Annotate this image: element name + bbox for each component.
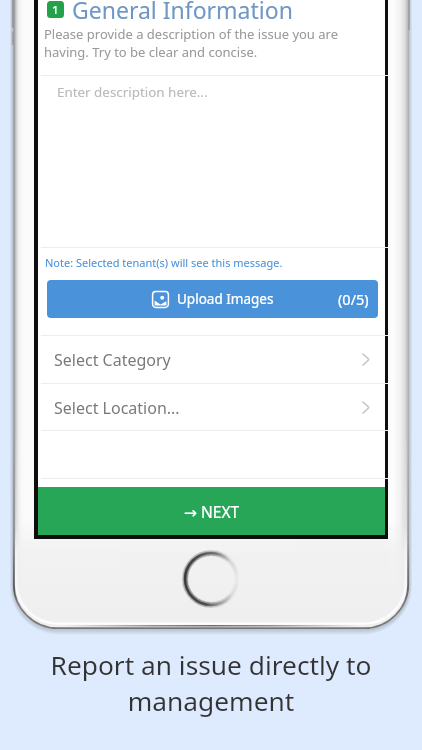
staticText: Enter description here... — [57, 83, 208, 101]
button[interactable]: Enter description here... — [38, 76, 385, 247]
staticText: Select Category — [54, 349, 171, 371]
staticText: Note: Selected tenant(s) will see this m… — [45, 255, 283, 270]
button[interactable]: Select Location... — [38, 384, 385, 431]
button[interactable]: Upload Images — [47, 280, 378, 318]
staticText: → NEXT — [184, 501, 240, 522]
button[interactable]: Select Category — [38, 336, 385, 383]
staticText: Please provide a description of the issu… — [44, 25, 339, 61]
staticText: General Information — [72, 0, 293, 25]
staticText: 1 — [52, 2, 59, 18]
button[interactable]: → NEXT — [38, 487, 385, 535]
staticText: Report an issue directly to management — [0, 647, 422, 719]
staticText: Select Location... — [54, 397, 180, 419]
staticText: Upload Images — [177, 290, 274, 308]
staticText: (0/5) — [338, 289, 369, 309]
